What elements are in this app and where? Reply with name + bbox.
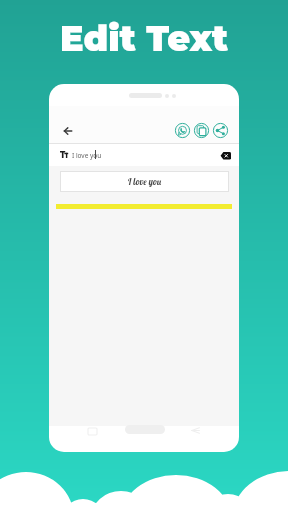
staticText: I love you	[72, 151, 102, 160]
staticText: I love you	[128, 176, 162, 187]
button[interactable]: Clear text	[220, 151, 231, 160]
button[interactable]: Recents	[83, 423, 102, 439]
staticText: Edit Text	[60, 17, 229, 60]
button[interactable]: I love you	[60, 171, 229, 192]
button[interactable]: Back	[186, 422, 205, 439]
button[interactable]: Copy text	[193, 122, 210, 139]
button[interactable]: Back	[61, 124, 75, 138]
button[interactable]: Share	[212, 122, 229, 139]
button[interactable]: Share to WhatsApp	[174, 122, 191, 139]
